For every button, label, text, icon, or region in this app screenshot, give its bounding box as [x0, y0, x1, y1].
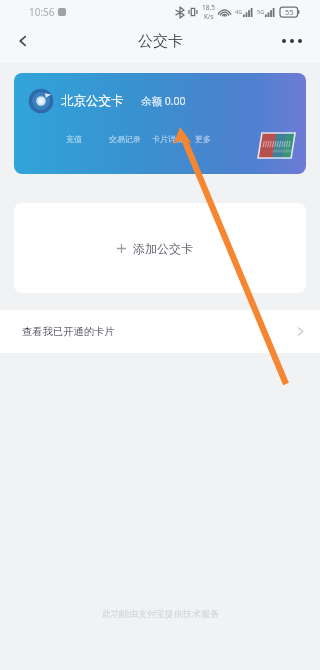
- button[interactable]: 北京公交卡: [14, 73, 306, 174]
- staticText: 充值: [66, 134, 82, 144]
- staticText: 余额 0.00: [141, 94, 186, 108]
- staticText: 查看我已开通的卡片: [22, 325, 115, 338]
- button[interactable]: 添加公交卡: [14, 203, 306, 293]
- staticText: 卡片详情: [152, 134, 184, 144]
- button[interactable]: More options: [277, 26, 307, 56]
- staticText: 此功能由支付宝提供技术服务: [102, 608, 219, 619]
- staticText: 18.5: [202, 3, 215, 12]
- staticText: 4G: [235, 8, 243, 15]
- staticText: 公交卡: [138, 32, 183, 51]
- button[interactable]: Back: [8, 26, 38, 56]
- button[interactable]: 查看我已开通的卡片: [0, 310, 320, 353]
- staticText: 交易记录: [109, 134, 141, 144]
- staticText: 55: [285, 7, 294, 17]
- staticText: K/s: [204, 12, 214, 21]
- staticText: 北京公交卡: [61, 93, 124, 109]
- staticText: 添加公交卡: [133, 241, 193, 256]
- staticText: 10:56: [29, 5, 55, 19]
- staticText: 5G: [257, 8, 265, 15]
- staticText: 更多: [195, 134, 211, 144]
